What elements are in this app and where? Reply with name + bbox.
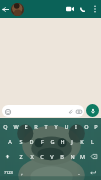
button[interactable]: A: [4, 134, 15, 149]
staticText: W: [13, 123, 19, 130]
staticText: Y: [54, 123, 58, 130]
staticText: C: [40, 153, 44, 160]
button[interactable]: ,: [17, 164, 27, 180]
staticText: V: [50, 153, 54, 160]
button[interactable]: .: [74, 164, 84, 180]
staticText: P: [94, 123, 98, 130]
staticText: N: [70, 153, 75, 160]
staticText: M: [80, 153, 85, 160]
button[interactable]: X: [26, 149, 37, 164]
button[interactable]: Q: [0, 118, 11, 134]
button[interactable]: U: [61, 118, 71, 134]
staticText: Q: [3, 123, 8, 130]
button[interactable]: G: [47, 134, 57, 149]
button[interactable]: Call: [76, 0, 89, 18]
staticText: B: [60, 153, 64, 160]
staticText: K: [80, 138, 84, 145]
staticText: X: [30, 153, 34, 160]
staticText: S: [19, 138, 23, 145]
button[interactable]: H: [57, 134, 67, 149]
staticText: H: [60, 138, 65, 145]
staticText: ,: [21, 169, 23, 176]
staticText: .: [78, 169, 80, 176]
button[interactable]: T: [41, 118, 51, 134]
button[interactable]: M: [77, 149, 87, 164]
button[interactable]: V: [47, 149, 57, 164]
button[interactable]: Attach: [66, 105, 74, 117]
button[interactable]: Voice message: [86, 104, 99, 117]
button[interactable]: Space: [27, 164, 74, 180]
staticText: E: [24, 123, 28, 130]
button[interactable]: Back: [0, 0, 11, 18]
button[interactable]: [11, 0, 63, 18]
button[interactable]: ?123: [0, 164, 17, 180]
button[interactable]: Emoji: [4, 108, 11, 115]
staticText: D: [29, 138, 34, 145]
button[interactable]: W: [11, 118, 21, 134]
staticText: Z: [19, 153, 23, 160]
button[interactable]: B: [57, 149, 67, 164]
staticText: F: [41, 138, 44, 145]
button[interactable]: J: [67, 134, 77, 149]
staticText: O: [84, 123, 89, 130]
button[interactable]: Enter: [84, 164, 101, 180]
button[interactable]: P: [91, 118, 101, 134]
button[interactable]: L: [87, 134, 97, 149]
button[interactable]: Y: [51, 118, 61, 134]
button[interactable]: More options: [89, 0, 100, 18]
button[interactable]: S: [15, 134, 26, 149]
button[interactable]: Emoji: [2, 105, 84, 117]
button[interactable]: Video call: [63, 0, 76, 18]
button[interactable]: Backspace: [87, 149, 101, 164]
button[interactable]: C: [37, 149, 47, 164]
button[interactable]: D: [26, 134, 37, 149]
button[interactable]: Z: [15, 149, 26, 164]
staticText: I: [75, 123, 77, 130]
staticText: A: [8, 138, 12, 145]
button[interactable]: O: [81, 118, 91, 134]
button[interactable]: F: [37, 134, 47, 149]
button[interactable]: N: [67, 149, 77, 164]
staticText: ?123: [4, 170, 13, 175]
button[interactable]: R: [31, 118, 41, 134]
staticText: J: [71, 138, 73, 145]
staticText: U: [64, 123, 69, 130]
button[interactable]: Camera: [74, 105, 83, 117]
button[interactable]: I: [71, 118, 81, 134]
staticText: G: [50, 138, 55, 145]
staticText: R: [34, 123, 38, 130]
button[interactable]: Shift: [0, 149, 15, 164]
staticText: L: [91, 138, 94, 145]
staticText: T: [44, 123, 48, 130]
button[interactable]: E: [21, 118, 31, 134]
button[interactable]: K: [77, 134, 87, 149]
